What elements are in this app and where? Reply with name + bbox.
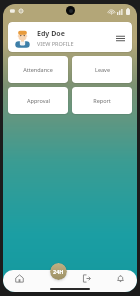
button[interactable]: Home [3,270,36,286]
button[interactable]: Edy Doe [8,22,132,52]
staticText: Report [93,97,111,104]
staticText: 24H [53,268,64,275]
staticText: Attendance [23,66,53,73]
staticText: VIEW PROFILE [37,40,74,47]
button[interactable]: Notifications [103,270,137,286]
button[interactable]: Logout [69,270,103,286]
button[interactable]: Leave [72,56,132,83]
button[interactable]: Attendance [8,56,68,83]
button[interactable]: Menu [113,31,127,45]
button[interactable]: 24H [50,263,67,280]
staticText: Edy Doe [37,29,65,39]
button[interactable]: Report [72,87,132,114]
staticText: Approval [27,97,50,104]
button[interactable]: Approval [8,87,68,114]
staticText: Leave [95,66,110,73]
